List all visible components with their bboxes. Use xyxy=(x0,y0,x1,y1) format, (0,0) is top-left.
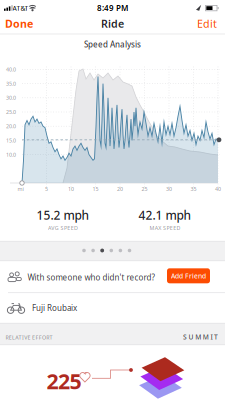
staticText: mi xyxy=(17,185,23,193)
staticText: AT&T xyxy=(12,4,28,13)
staticText: 5 xyxy=(45,185,48,193)
button[interactable]: Add Friend xyxy=(167,268,210,283)
staticText: 8:49 PM xyxy=(97,3,128,13)
staticText: 15.2 mph xyxy=(36,207,89,223)
button[interactable]: Edit xyxy=(197,16,217,31)
staticText: Done xyxy=(5,16,33,31)
staticText: 10.0 xyxy=(6,151,16,158)
staticText: 35 xyxy=(190,185,196,193)
staticText: Fuji Roubaix xyxy=(32,303,77,313)
staticText: 10 xyxy=(68,185,74,193)
staticText: MAX SPEED xyxy=(149,224,181,232)
staticText: 40.0 xyxy=(6,66,16,73)
staticText: With someone who didn't record? xyxy=(27,272,154,283)
staticText: 20 xyxy=(117,185,123,193)
staticText: 20.0 xyxy=(6,123,16,130)
staticText: SUMMIT xyxy=(183,333,218,341)
staticText: Speed Analysis xyxy=(84,39,141,50)
staticText: Ride xyxy=(101,16,124,31)
staticText: 25.0 xyxy=(6,108,16,116)
staticText: 30 xyxy=(166,185,172,193)
staticText: 42.1 mph xyxy=(138,207,191,223)
staticText: 15 xyxy=(92,185,98,193)
staticText: 40 xyxy=(215,185,221,193)
staticText: RELATIVE EFFORT xyxy=(5,334,53,341)
staticText: 25 xyxy=(141,185,147,193)
button[interactable]: Fuji Roubaix xyxy=(8,293,225,322)
staticText: Edit xyxy=(197,16,217,31)
button[interactable]: Done xyxy=(5,16,33,31)
staticText: 225 xyxy=(46,367,81,395)
staticText: AVG SPEED xyxy=(48,224,78,232)
staticText: 15.0 xyxy=(6,137,16,144)
staticText: 30.0 xyxy=(6,94,16,101)
staticText: 35.0 xyxy=(6,80,16,87)
staticText: Add Friend xyxy=(171,271,206,280)
